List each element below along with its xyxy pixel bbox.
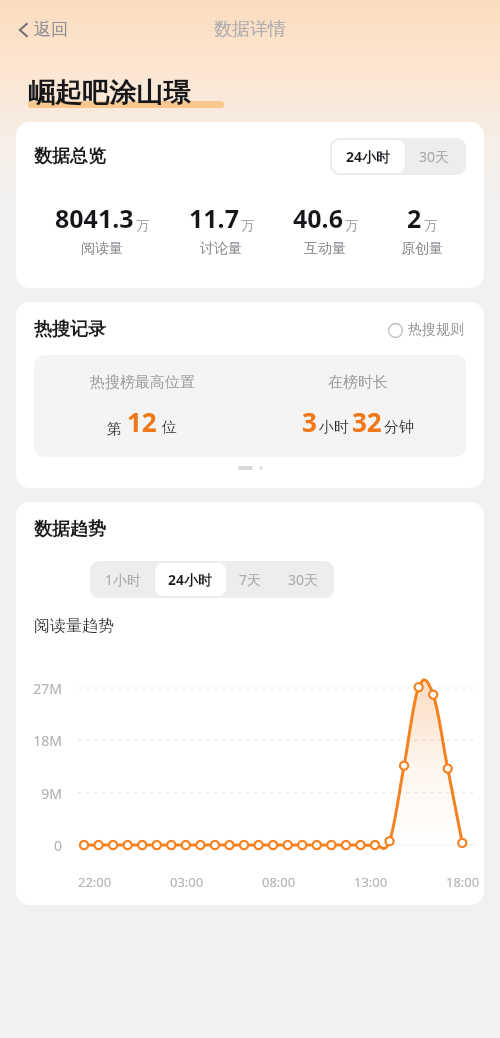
staticText: 数据总览 xyxy=(34,145,106,168)
staticText: 03:00 xyxy=(170,873,204,891)
staticText: 数据详情 xyxy=(214,18,286,41)
staticText: 13:00 xyxy=(354,873,388,891)
staticText: 12 xyxy=(127,404,157,439)
button[interactable]: 7天 xyxy=(226,563,275,596)
staticText: 40.6 xyxy=(293,201,343,235)
button[interactable]: 24小时 xyxy=(332,140,405,173)
staticText: 1小时 xyxy=(105,570,142,589)
staticText: 互动量 xyxy=(304,240,346,258)
staticText: 阅读量趋势 xyxy=(34,616,114,636)
staticText: 讨论量 xyxy=(200,240,242,258)
staticText: 第 xyxy=(107,420,122,439)
staticText: 2 xyxy=(407,201,422,235)
staticText: 在榜时长 xyxy=(328,373,388,392)
button[interactable]: 30天 xyxy=(405,140,464,173)
staticText: 22:00 xyxy=(78,873,112,891)
staticText: 32 xyxy=(352,404,382,439)
staticText: 分钟 xyxy=(384,418,414,437)
staticText: 小时 xyxy=(319,418,349,437)
staticText: 崛起吧涂山璟 xyxy=(28,76,190,110)
staticText: 阅读量 xyxy=(81,240,123,258)
button[interactable]: 热搜规则 xyxy=(386,319,466,341)
staticText: 30天 xyxy=(288,570,319,589)
staticText: 位 xyxy=(162,418,177,437)
button[interactable]: 24小时 xyxy=(155,563,226,596)
staticText: 8041.3 xyxy=(55,201,134,235)
staticText: 热搜记录 xyxy=(34,318,106,341)
staticText: 万 xyxy=(136,217,149,233)
staticText: 数据趋势 xyxy=(34,518,106,541)
staticText: 24小时 xyxy=(168,570,213,589)
button[interactable]: 返回 xyxy=(12,15,72,44)
staticText: 3 xyxy=(302,404,317,439)
button[interactable]: 30天 xyxy=(275,563,332,596)
staticText: 9M xyxy=(16,784,62,803)
staticText: 原创量 xyxy=(401,240,443,258)
staticText: 27M xyxy=(16,679,62,698)
staticText: 万 xyxy=(345,217,358,233)
staticText: 18:00 xyxy=(446,873,480,891)
staticText: 18M xyxy=(16,731,62,750)
button[interactable]: 1小时 xyxy=(92,563,155,596)
staticText: 08:00 xyxy=(262,873,296,891)
staticText: 热搜规则 xyxy=(408,321,464,339)
staticText: 11.7 xyxy=(189,201,239,235)
staticText: 24小时 xyxy=(346,147,391,166)
staticText: 0 xyxy=(16,836,62,855)
staticText: 万 xyxy=(241,217,254,233)
staticText: 热搜榜最高位置 xyxy=(90,373,195,392)
staticText: 万 xyxy=(424,217,437,233)
staticText: 7天 xyxy=(239,570,262,589)
staticText: 30天 xyxy=(419,147,450,166)
staticText: 返回 xyxy=(34,19,68,40)
